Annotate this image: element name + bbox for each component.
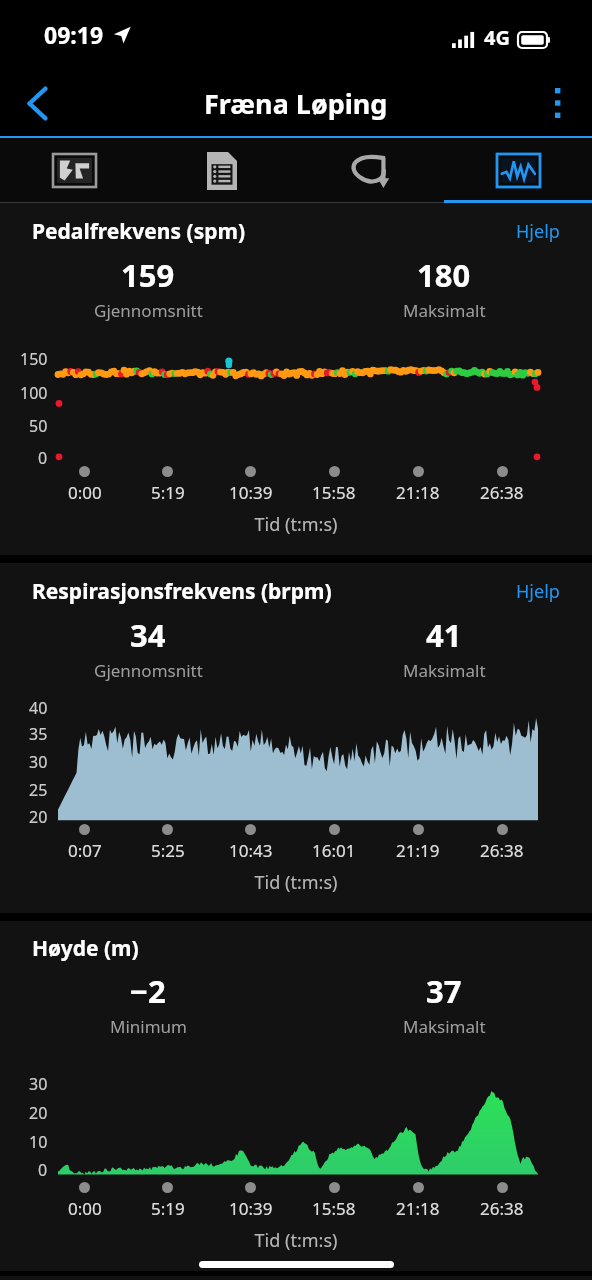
staticText: 15:58 <box>312 481 356 504</box>
staticText: 37 <box>426 970 462 1012</box>
button[interactable]: Map <box>0 138 148 203</box>
staticText: Hjelp <box>516 219 560 244</box>
staticText: Respirasjonsfrekvens (brpm) <box>32 577 512 606</box>
button[interactable]: More options <box>524 68 592 138</box>
staticText: Minimum <box>110 1015 187 1038</box>
staticText: 159 <box>121 254 175 296</box>
staticText: Maksimalt <box>403 659 486 682</box>
staticText: 0 <box>38 447 48 469</box>
staticText: 0:00 <box>68 1197 102 1220</box>
staticText: 21:18 <box>396 1197 440 1220</box>
staticText: Hjelp <box>516 579 560 604</box>
staticText: 20 <box>29 1102 48 1124</box>
staticText: −2 <box>130 970 166 1012</box>
button[interactable]: Details <box>148 138 296 203</box>
staticText: 0 <box>38 1159 48 1181</box>
staticText: Gjennomsnitt <box>94 299 203 322</box>
staticText: Gjennomsnitt <box>94 659 203 682</box>
staticText: Tid (t:m:s) <box>0 512 592 537</box>
staticText: 150 <box>20 348 48 370</box>
staticText: Pedalfrekvens (spm) <box>32 217 512 246</box>
staticText: 20 <box>29 806 48 828</box>
staticText: 16:01 <box>312 839 356 862</box>
staticText: Maksimalt <box>403 1015 486 1038</box>
staticText: 30 <box>29 1073 48 1095</box>
staticText: 41 <box>426 614 462 656</box>
button[interactable]: Laps <box>296 138 444 203</box>
staticText: 180 <box>417 254 471 296</box>
staticText: 26:38 <box>480 1197 524 1220</box>
staticText: 4G <box>484 24 510 51</box>
staticText: 09:19 <box>44 19 104 50</box>
staticText: 40 <box>29 697 48 719</box>
staticText: 5:25 <box>151 839 185 862</box>
staticText: 30 <box>29 751 48 773</box>
staticText: 25 <box>29 779 48 801</box>
staticText: 21:18 <box>396 481 440 504</box>
staticText: Tid (t:m:s) <box>0 1228 592 1253</box>
staticText: 10 <box>29 1131 48 1153</box>
staticText: 10:43 <box>229 839 273 862</box>
button[interactable]: Hjelp <box>512 576 564 607</box>
staticText: 26:38 <box>480 481 524 504</box>
button[interactable]: Charts <box>444 138 592 203</box>
staticText: Tid (t:m:s) <box>0 870 592 895</box>
staticText: 10:39 <box>229 481 273 504</box>
staticText: 15:58 <box>312 1197 356 1220</box>
staticText: Maksimalt <box>403 299 486 322</box>
staticText: 35 <box>29 723 48 745</box>
staticText: 5:19 <box>151 1197 185 1220</box>
button[interactable]: Back <box>0 68 74 138</box>
staticText: Fræna Løping <box>204 85 388 122</box>
button[interactable]: Hjelp <box>512 216 564 247</box>
staticText: Høyde (m) <box>32 934 564 963</box>
staticText: 50 <box>29 415 48 437</box>
staticText: 34 <box>130 614 166 656</box>
staticText: 0:00 <box>68 481 102 504</box>
staticText: 100 <box>20 382 48 404</box>
staticText: 0:07 <box>68 839 102 862</box>
staticText: 26:38 <box>480 839 524 862</box>
staticText: 10:39 <box>229 1197 273 1220</box>
staticText: 21:19 <box>396 839 440 862</box>
staticText: 5:19 <box>151 481 185 504</box>
